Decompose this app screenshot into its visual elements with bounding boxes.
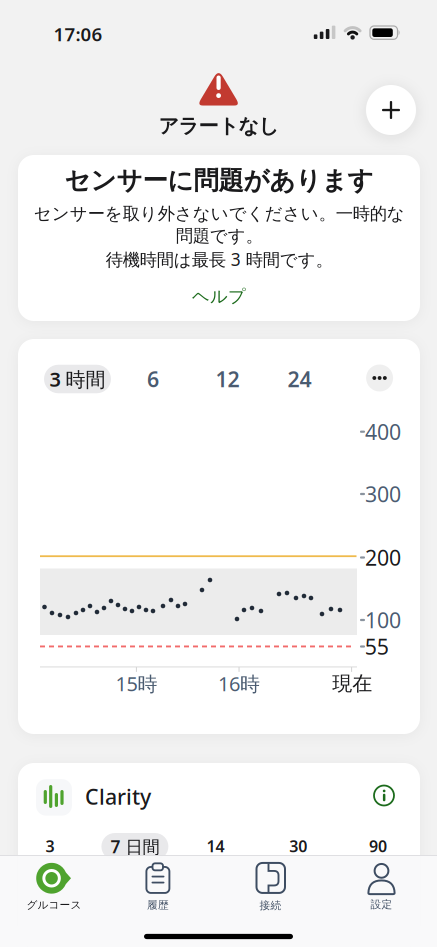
- button[interactable]: 24: [279, 364, 319, 393]
- staticText: 300: [365, 480, 401, 508]
- staticText: ヘルプ: [192, 286, 246, 307]
- staticText: 24: [287, 365, 311, 393]
- staticText: 6: [147, 365, 159, 393]
- button[interactable]: About Clarity: [374, 785, 394, 805]
- staticText: 接続: [259, 899, 281, 912]
- staticText: 現在: [332, 671, 372, 696]
- button[interactable]: 設定: [331, 861, 431, 913]
- button[interactable]: 7 日間: [101, 833, 168, 860]
- staticText: 17:06: [53, 22, 102, 46]
- staticText: 90: [369, 835, 387, 857]
- button[interactable]: 接続: [220, 861, 320, 913]
- staticText: 55: [365, 632, 389, 661]
- button[interactable]: 3: [33, 831, 67, 860]
- staticText: Clarity: [85, 782, 151, 811]
- button[interactable]: 90: [361, 831, 395, 860]
- button[interactable]: 履歴: [108, 861, 208, 913]
- staticText: 履歴: [147, 898, 169, 911]
- staticText: 400: [365, 417, 401, 446]
- button[interactable]: 12: [208, 364, 248, 393]
- staticText: 30: [289, 835, 307, 857]
- staticText: グルコース: [26, 898, 81, 911]
- button[interactable]: More options: [366, 364, 393, 391]
- button[interactable]: グルコース: [4, 861, 104, 913]
- staticText: 設定: [370, 898, 392, 911]
- button[interactable]: 14: [198, 831, 232, 860]
- staticText: アラートなし: [158, 114, 278, 138]
- staticText: センサーを取り外さないでください。一時的な 問題です。 待機時間は最長 3 時間…: [33, 203, 404, 271]
- staticText: 3: [45, 835, 54, 857]
- staticText: 14: [206, 835, 224, 857]
- button[interactable]: ヘルプ: [192, 286, 246, 307]
- button[interactable]: 6: [133, 364, 173, 393]
- staticText: センサーに問題があります: [64, 165, 373, 196]
- staticText: 7 日間: [110, 835, 159, 858]
- staticText: 15時: [115, 670, 157, 697]
- staticText: 3 時間: [49, 366, 105, 392]
- staticText: 12: [216, 365, 240, 393]
- button[interactable]: 3 時間: [44, 365, 111, 393]
- button[interactable]: Add alert: [366, 85, 416, 135]
- button[interactable]: 30: [281, 831, 315, 860]
- staticText: 16時: [218, 670, 260, 697]
- staticText: 200: [365, 543, 401, 572]
- staticText: 100: [365, 606, 401, 634]
